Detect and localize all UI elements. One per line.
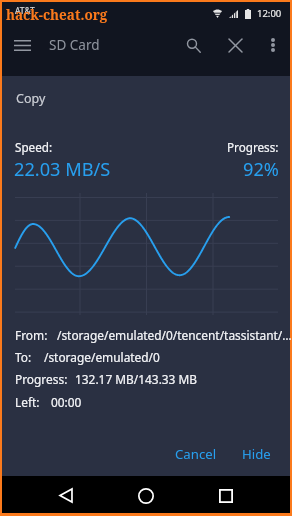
button[interactable]: Hide <box>234 439 279 469</box>
staticText: /storage/emulated/0/tencent/tassistant/… <box>57 327 292 343</box>
button[interactable]: Search <box>172 24 214 66</box>
button[interactable]: Close <box>214 24 256 66</box>
staticText: 22.03 MB/S <box>14 157 111 182</box>
staticText: Cancel <box>175 445 217 463</box>
staticText: Left: <box>15 394 40 410</box>
staticText: hack-cheat.org <box>6 6 108 24</box>
staticText: 12:00 <box>257 7 282 20</box>
button[interactable]: Open navigation drawer <box>2 24 42 66</box>
staticText: Progress: <box>227 139 279 155</box>
staticText: To: <box>15 349 32 365</box>
staticText: 132.17 MB/143.33 MB <box>75 371 198 387</box>
button[interactable]: Back <box>48 477 84 514</box>
staticText: 00:00 <box>51 394 82 410</box>
staticText: SD Card <box>49 36 100 54</box>
staticText: Progress: <box>15 371 68 387</box>
staticText: Hide <box>242 445 271 463</box>
staticText: From: <box>15 327 48 343</box>
staticText: 92% <box>243 157 279 182</box>
button[interactable]: More options <box>256 24 290 66</box>
button[interactable]: Home <box>128 477 164 514</box>
staticText: /storage/emulated/0 <box>44 349 160 365</box>
staticText: Copy <box>16 90 46 107</box>
staticText: Speed: <box>15 139 53 155</box>
button[interactable]: Recent apps <box>208 477 244 514</box>
button[interactable]: Cancel <box>167 439 225 469</box>
staticText: AT&T <box>15 5 35 17</box>
